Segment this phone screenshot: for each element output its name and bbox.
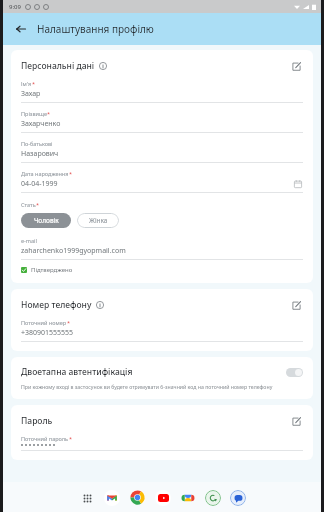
staticText: Персональні дані: [21, 60, 95, 72]
staticText: Підтверджено: [31, 266, 73, 274]
button[interactable]: Pick date: [293, 179, 303, 189]
button[interactable]: Two-step authentication toggle: [286, 368, 303, 377]
staticText: Жінка: [89, 216, 108, 225]
staticText: Дата народження: [21, 170, 69, 177]
staticText: Захарченко: [21, 119, 303, 129]
staticText: 04-04-1999: [21, 179, 293, 189]
button[interactable]: Edit personal data: [289, 59, 303, 73]
staticText: Прізвище: [21, 110, 47, 117]
staticText: *: [67, 319, 71, 326]
button[interactable]: Edit phone number: [289, 298, 303, 312]
staticText: Стать: [21, 201, 36, 208]
button[interactable]: YouTube: [155, 490, 171, 506]
button[interactable]: Recycle: [205, 490, 221, 506]
staticText: Назарович: [21, 149, 303, 159]
button[interactable]: Chrome: [129, 489, 146, 506]
button[interactable]: Messages: [230, 490, 246, 506]
staticText: Захар: [21, 89, 303, 99]
button[interactable]: Жінка: [77, 213, 119, 228]
staticText: Двоетапна автентифікація: [21, 366, 133, 378]
button[interactable]: All apps: [79, 490, 95, 506]
button[interactable]: Двоетапна автентифікація: [11, 357, 313, 399]
staticText: *: [69, 435, 73, 442]
button[interactable]: Gmail: [104, 490, 120, 506]
button[interactable]: Google Photos: [180, 490, 196, 506]
staticText: По-батькові: [21, 140, 53, 147]
staticText: Чоловік: [34, 216, 59, 225]
button[interactable]: Edit password: [289, 414, 303, 428]
staticText: Номер телефону: [21, 299, 92, 311]
staticText: zaharchenko1999gyopmail.com: [21, 246, 303, 256]
staticText: Поточний пароль: [21, 435, 69, 442]
staticText: Ім'я: [21, 80, 32, 87]
staticText: Налаштування профілю: [37, 22, 154, 36]
staticText: При кожному вході в застосунок ви будете…: [21, 383, 273, 390]
staticText: *: [69, 170, 73, 177]
staticText: +380901555555: [21, 328, 303, 338]
button[interactable]: Back: [13, 21, 29, 37]
staticText: *: [47, 110, 51, 117]
staticText: 9:09: [9, 3, 21, 11]
staticText: Поточний номер: [21, 319, 67, 326]
staticText: *: [36, 201, 40, 208]
button[interactable]: Чоловік: [21, 213, 71, 228]
staticText: Пароль: [21, 415, 53, 427]
staticText: *: [32, 80, 36, 87]
staticText: e-mail: [21, 237, 37, 244]
